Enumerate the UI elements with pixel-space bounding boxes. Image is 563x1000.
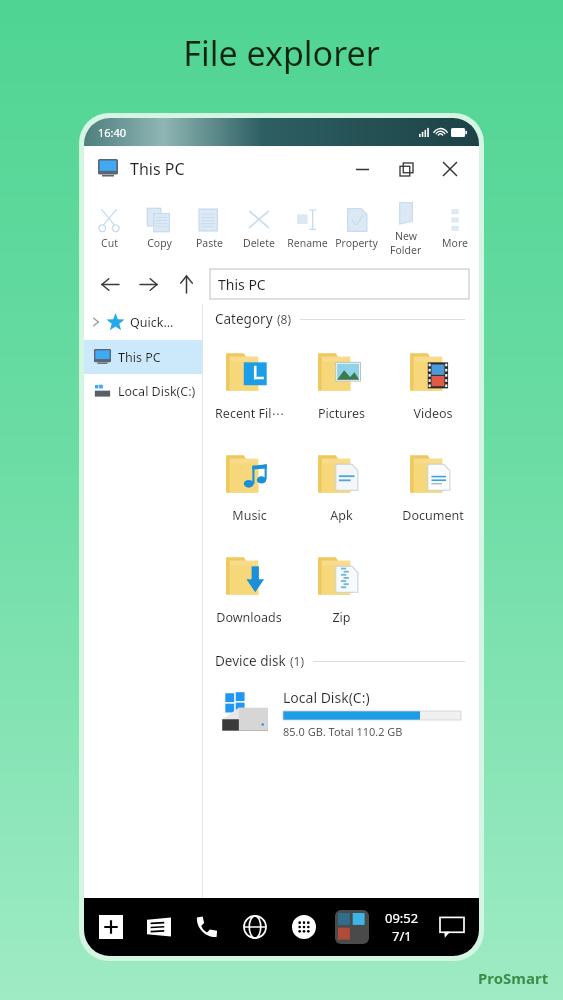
staticText: More (442, 236, 468, 250)
staticText: 7/1 (392, 927, 412, 945)
staticText: Videos (413, 405, 453, 422)
staticText: Document (402, 507, 464, 524)
staticText: Apk (330, 507, 353, 524)
button[interactable]: Minimize (347, 154, 377, 184)
button[interactable]: Apk (295, 436, 387, 538)
button[interactable]: Delete (234, 192, 283, 264)
button[interactable]: 09:52 (383, 909, 421, 945)
button[interactable]: Copy (134, 192, 184, 264)
staticText: (1) (290, 653, 305, 669)
staticText: 85.0 GB. Total 110.2 GB (283, 724, 403, 739)
button[interactable]: Videos (387, 334, 479, 436)
staticText: This PC (118, 349, 161, 366)
button[interactable]: Up (172, 270, 200, 298)
staticText: Rename (287, 236, 328, 250)
staticText: Copy (147, 236, 172, 250)
button[interactable]: Property (332, 192, 381, 264)
staticText: 16:40 (98, 125, 127, 140)
staticText: New (395, 229, 417, 243)
button[interactable]: Downloads (203, 538, 295, 640)
staticText: Quick… (130, 314, 174, 331)
staticText: File explorer (183, 30, 380, 76)
staticText: Category (215, 310, 273, 328)
button[interactable]: Restore (391, 154, 421, 184)
button[interactable]: Quick… (84, 304, 202, 340)
button[interactable]: Widgets (335, 910, 369, 944)
button[interactable]: This PC (84, 340, 202, 374)
button[interactable]: Browser (238, 910, 272, 944)
staticText: Recent Fil⋯ (215, 405, 284, 422)
staticText: Delete (243, 236, 275, 250)
staticText: Music (232, 507, 267, 524)
button[interactable]: This PC (210, 269, 469, 299)
button[interactable]: Rename (283, 192, 332, 264)
button[interactable]: Recent Fil⋯ (203, 334, 295, 436)
button[interactable]: Paste (184, 192, 234, 264)
staticText: Device disk (215, 652, 286, 670)
button[interactable]: Forward (134, 270, 162, 298)
button[interactable]: Add (94, 910, 128, 944)
button[interactable]: Back (96, 270, 124, 298)
button[interactable]: Apps (287, 910, 321, 944)
button[interactable]: Local Disk(C:) (203, 676, 479, 750)
staticText: Folder (390, 243, 422, 257)
staticText: Local Disk(C:) (283, 688, 370, 707)
button[interactable]: Pictures (295, 334, 387, 436)
button[interactable]: Local Disk(C:) (84, 374, 202, 408)
button[interactable]: Cut (84, 192, 134, 264)
staticText: Downloads (216, 609, 282, 626)
button[interactable]: Messages (142, 910, 176, 944)
staticText: This PC (218, 275, 266, 294)
staticText: ProSmart (478, 968, 549, 988)
staticText: Pictures (318, 405, 365, 422)
button[interactable]: Document (387, 436, 479, 538)
staticText: (8) (277, 311, 292, 327)
button[interactable]: Music (203, 436, 295, 538)
staticText: Paste (196, 236, 223, 250)
staticText: This PC (130, 158, 185, 180)
staticText: Local Disk(C:) (118, 383, 196, 400)
button[interactable]: New (381, 192, 430, 264)
staticText: Zip (332, 609, 351, 626)
staticText: Cut (101, 236, 118, 250)
button[interactable]: Phone (190, 910, 224, 944)
button[interactable]: Chat (435, 910, 469, 944)
staticText: Property (335, 236, 378, 250)
button[interactable]: More (430, 192, 479, 264)
button[interactable]: Zip (295, 538, 387, 640)
button[interactable]: Close (435, 154, 465, 184)
staticText: 09:52 (385, 909, 419, 927)
